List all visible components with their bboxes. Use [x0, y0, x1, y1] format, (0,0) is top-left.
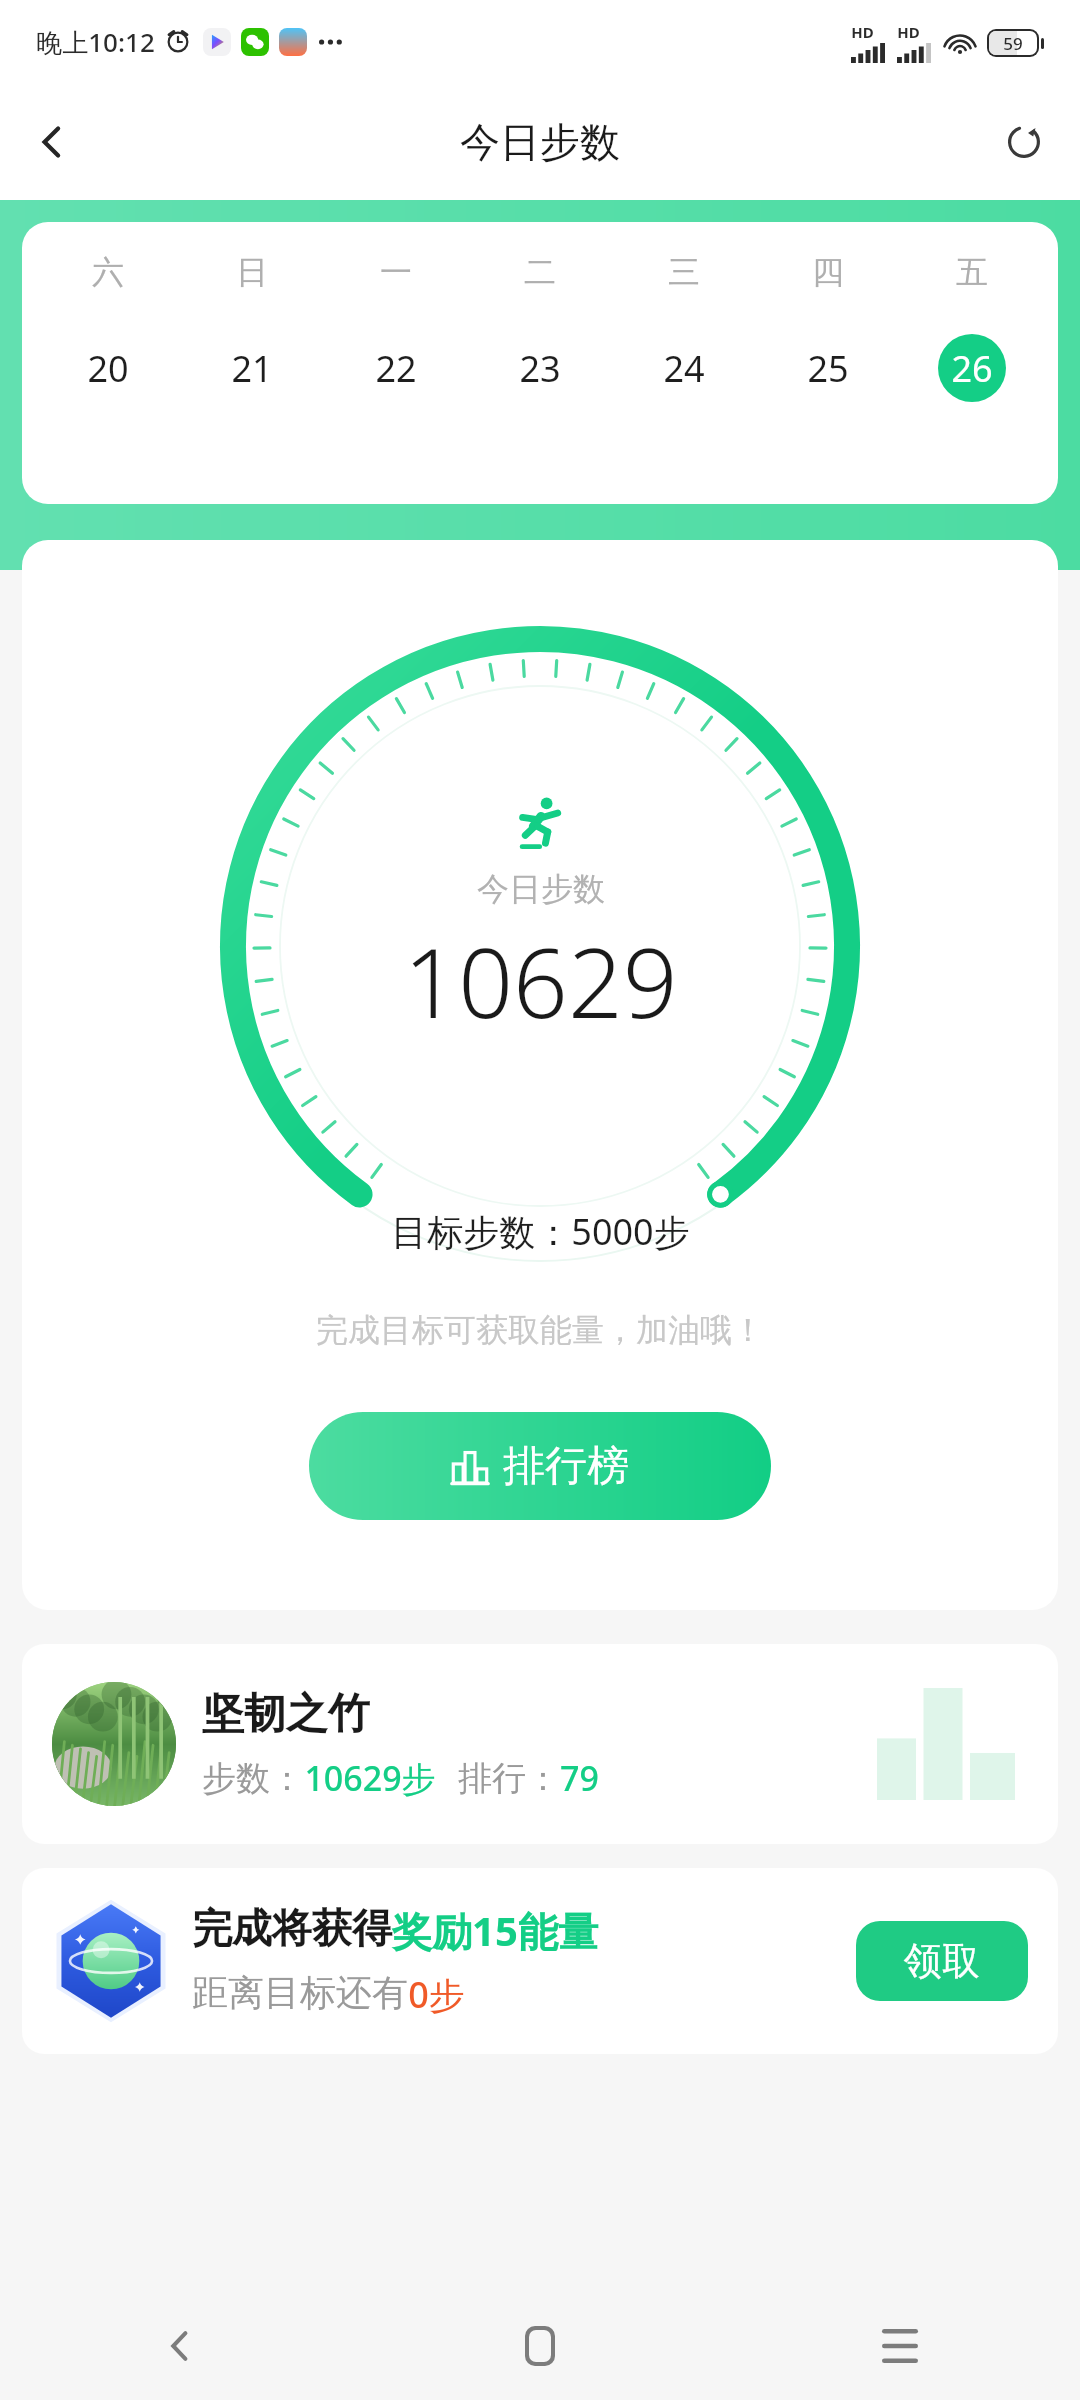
staticText: 完成目标可获取能量，加油哦！	[316, 1310, 764, 1350]
staticText: 21	[231, 344, 273, 393]
button[interactable]: 坚韧之竹	[22, 1644, 1058, 1844]
button[interactable]: 领取	[856, 1921, 1028, 2001]
staticText: 日	[236, 252, 268, 292]
staticText: 四	[812, 252, 844, 292]
staticText: 领取	[904, 1937, 980, 1985]
button[interactable]: 23	[506, 334, 574, 402]
staticText: 坚韧之竹	[202, 1688, 370, 1741]
button[interactable]: 22	[362, 334, 430, 402]
staticText: 五	[956, 252, 988, 292]
staticText: 今日步数	[477, 869, 605, 909]
staticText: 25	[807, 344, 849, 393]
button[interactable]: Home	[360, 2292, 720, 2400]
staticText: 晚上10:12	[36, 24, 155, 60]
staticText: 10629步	[304, 1755, 436, 1801]
staticText: 完成将获得	[192, 1903, 392, 1953]
staticText: 24	[663, 344, 705, 393]
staticText: 26	[951, 344, 993, 393]
button[interactable]: Share	[988, 106, 1060, 178]
button[interactable]: 20	[74, 334, 142, 402]
button[interactable]: Back	[0, 2292, 360, 2400]
staticText: 23	[519, 344, 561, 393]
button[interactable]: 24	[650, 334, 718, 402]
staticText: 10629	[403, 915, 678, 1046]
staticText: 排行榜	[503, 1440, 629, 1493]
staticText: HD	[897, 22, 920, 42]
staticText: 距离目标还有	[192, 1970, 408, 2015]
staticText: 59	[1003, 32, 1023, 55]
button[interactable]: 完成将获得	[22, 1868, 1058, 2054]
staticText: 一	[380, 252, 412, 292]
button[interactable]: 25	[794, 334, 862, 402]
staticText: 奖励15能量	[392, 1903, 598, 1958]
button[interactable]: 21	[218, 334, 286, 402]
staticText: 三	[668, 252, 700, 292]
staticText: 步数：	[202, 1757, 304, 1800]
staticText: 79	[560, 1755, 599, 1801]
staticText: 六	[92, 252, 124, 292]
staticText: 20	[87, 344, 129, 393]
staticText: HD	[851, 22, 874, 42]
staticText: 目标步数：5000步	[391, 1207, 690, 1256]
button[interactable]: 六	[22, 222, 1058, 504]
staticText: 22	[375, 344, 417, 393]
staticText: 排行：	[458, 1757, 560, 1800]
staticText: 0步	[408, 1970, 465, 2019]
staticText: 二	[524, 252, 556, 292]
staticText: 今日步数	[460, 117, 620, 167]
button[interactable]: Recent apps	[720, 2292, 1080, 2400]
button[interactable]: 排行榜	[309, 1412, 771, 1520]
button[interactable]: Back	[16, 106, 88, 178]
button[interactable]: 26	[938, 334, 1006, 402]
